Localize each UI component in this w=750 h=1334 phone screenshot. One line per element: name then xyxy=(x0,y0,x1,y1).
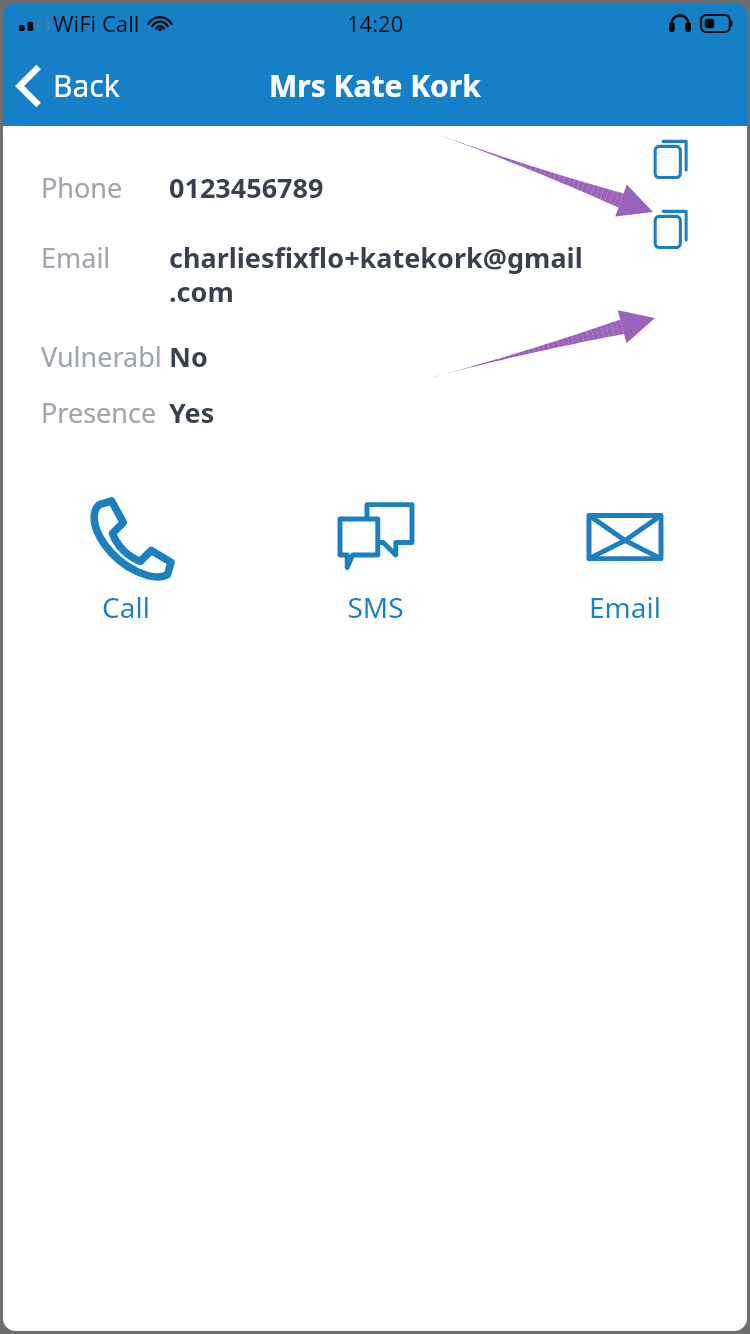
staticText: No xyxy=(169,338,208,375)
staticText: Phone xyxy=(41,169,123,206)
button[interactable]: Back xyxy=(1,45,136,126)
staticText: Mrs Kate Kork xyxy=(269,65,481,106)
staticText: 14:20 xyxy=(347,8,404,38)
staticText: Call xyxy=(102,588,150,626)
button[interactable]: Copy phone number xyxy=(646,134,696,184)
button[interactable]: Call xyxy=(1,488,251,630)
staticText: 0123456789 xyxy=(169,169,324,206)
button[interactable]: SMS xyxy=(251,488,500,630)
button[interactable]: Email xyxy=(500,488,749,630)
staticText: WiFi Call xyxy=(53,8,140,38)
staticText: Back xyxy=(53,65,120,106)
staticText: SMS xyxy=(347,588,404,626)
staticText: Vulnerable xyxy=(41,338,169,384)
staticText: Presence xyxy=(41,394,157,431)
button[interactable]: Copy email address xyxy=(646,204,696,254)
staticText: charliesfixflo+katekork@gmail.com xyxy=(169,239,589,310)
staticText: Email xyxy=(41,239,111,276)
staticText: Email xyxy=(589,588,661,626)
staticText: Yes xyxy=(169,394,215,431)
